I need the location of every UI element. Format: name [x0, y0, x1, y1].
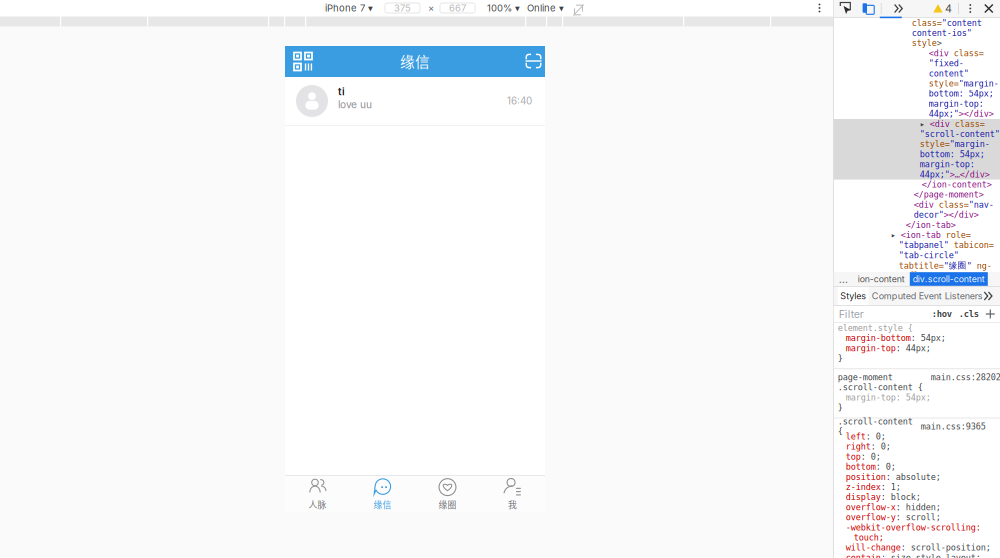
staticText: margin-top: 54px;	[846, 392, 931, 402]
button[interactable]: Styles	[838, 287, 869, 305]
button[interactable]: Close DevTools	[984, 3, 994, 13]
staticText: : 0;	[871, 442, 891, 452]
staticText: love uu	[338, 98, 372, 111]
staticText: iPhone 7 ▾	[325, 2, 373, 14]
staticText: "缘圈"	[944, 260, 972, 271]
staticText: 我	[508, 498, 517, 511]
staticText: "nav-	[969, 200, 994, 210]
staticText: <div	[914, 200, 939, 210]
staticText: class=	[939, 200, 969, 210]
staticText: 4	[945, 2, 952, 15]
staticText: right	[846, 442, 871, 452]
staticText: overflow-y	[846, 512, 896, 522]
staticText: 缘信	[373, 498, 391, 511]
staticText: top	[846, 452, 861, 462]
staticText: =	[959, 270, 964, 280]
staticText: left	[846, 432, 866, 441]
staticText: 16:40	[507, 95, 532, 107]
staticText: style=	[929, 79, 959, 88]
staticText: div.scroll-content	[913, 274, 985, 284]
button[interactable]: More tabs	[983, 287, 994, 305]
staticText: >	[979, 190, 984, 200]
staticText: "margin-	[950, 139, 990, 149]
staticText: : 44px;	[896, 343, 931, 353]
staticText: page-moment	[838, 372, 893, 382]
button[interactable]: Online ▾	[527, 0, 564, 16]
staticText: :hov	[932, 309, 952, 319]
staticText: tabicon=	[954, 240, 994, 250]
button[interactable]: QR code	[290, 46, 316, 77]
staticText: 375	[394, 2, 411, 14]
staticText: content-ios"	[912, 28, 972, 38]
staticText: }	[838, 353, 843, 363]
staticText: : 0;	[866, 432, 886, 441]
staticText: position	[846, 472, 886, 482]
button[interactable]: Scan	[523, 46, 544, 76]
staticText: display	[846, 492, 881, 502]
staticText: margin-bottom	[846, 333, 911, 343]
button[interactable]: Inspect element	[839, 1, 854, 15]
staticText: .cls	[959, 309, 979, 319]
staticText: Online ▾	[527, 2, 564, 14]
staticText: 缘信	[400, 50, 430, 72]
staticText: decor"	[914, 210, 944, 220]
staticText: Styles	[840, 290, 866, 301]
staticText: class=	[955, 119, 985, 129]
staticText: margin-top:	[920, 159, 975, 169]
staticText: 44px;"	[920, 169, 950, 179]
staticText: ></div	[959, 109, 989, 119]
staticText: will-change	[846, 543, 901, 553]
staticText: ×	[428, 2, 434, 14]
staticText: bottom: 54px;	[920, 149, 985, 159]
staticText: ></div	[944, 210, 974, 220]
button[interactable]: 人脉	[285, 473, 350, 515]
staticText: : scroll-position;	[901, 543, 991, 553]
button[interactable]: More options	[814, 0, 825, 16]
staticText: -webkit-overflow-scrolling:	[846, 522, 981, 532]
button[interactable]: ti	[285, 77, 545, 125]
button[interactable]: 100% ▾	[487, 0, 520, 16]
staticText: : size style layout;	[881, 553, 981, 558]
button[interactable]: More panels	[893, 2, 905, 14]
staticText: >	[951, 220, 956, 230]
button[interactable]: Customize and control DevTools	[965, 2, 976, 14]
button[interactable]: iPhone 7 ▾	[325, 0, 373, 16]
staticText: }	[838, 403, 843, 412]
staticText: : 0;	[876, 462, 896, 472]
button[interactable]: 缘信	[350, 473, 415, 515]
staticText: >	[985, 169, 990, 179]
staticText: bottom: 54px;	[929, 89, 994, 99]
staticText: reflect-root	[899, 270, 959, 280]
staticText: main.css:28202	[931, 372, 1000, 382]
staticText: bottom	[846, 462, 876, 472]
staticText: ▸	[920, 119, 930, 129]
staticText: : 1;	[881, 482, 901, 492]
staticText: "fixed-	[929, 58, 964, 68]
staticText: : scroll;	[896, 512, 941, 522]
button[interactable]: ion-content	[858, 274, 905, 284]
staticText: margin-top	[846, 343, 896, 353]
button[interactable]: 我	[480, 473, 545, 515]
staticText: main.css:9365	[921, 421, 986, 431]
button[interactable]: Event Listeners	[919, 287, 983, 305]
button[interactable]: Computed	[872, 287, 917, 305]
staticText: : 54px;	[911, 333, 946, 343]
staticText: .scroll-content {	[838, 416, 913, 436]
button[interactable]: div.scroll-content	[910, 272, 988, 286]
staticText: "content	[942, 18, 982, 28]
staticText: "margin-	[959, 79, 999, 88]
staticText: <div	[930, 119, 955, 129]
staticText: : block;	[881, 492, 921, 502]
staticText: z-index	[846, 482, 881, 492]
staticText: >	[989, 109, 994, 119]
button[interactable]: Toggle device toolbar	[861, 1, 875, 15]
button[interactable]: 缘圈	[415, 473, 480, 515]
staticText: <div	[929, 48, 954, 58]
staticText: 667	[449, 2, 466, 14]
button[interactable]: Rotate	[572, 2, 585, 18]
button[interactable]: New style rule	[986, 309, 995, 318]
staticText: "tab-circle"	[899, 250, 959, 260]
staticText: content"	[929, 68, 969, 78]
staticText: class=	[912, 18, 942, 28]
staticText: Filter	[839, 307, 864, 320]
